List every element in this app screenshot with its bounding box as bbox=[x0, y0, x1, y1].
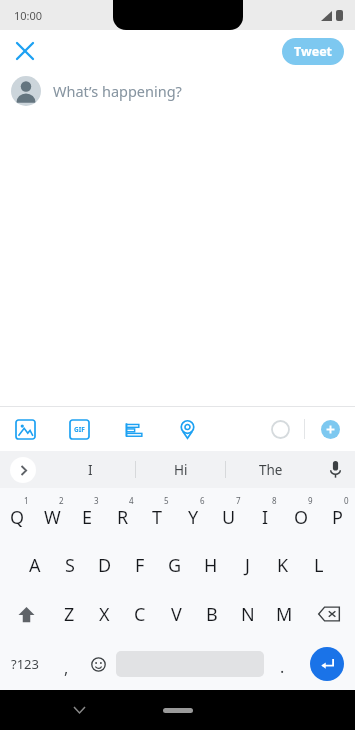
button[interactable]: L bbox=[301, 540, 337, 590]
button[interactable]: V bbox=[158, 590, 194, 638]
button[interactable]: Home bbox=[163, 708, 193, 713]
staticText: W bbox=[44, 505, 61, 530]
staticText: 4 bbox=[129, 495, 134, 506]
staticText: ?123 bbox=[11, 655, 39, 673]
button[interactable]: B bbox=[194, 590, 230, 638]
button[interactable]: O bbox=[283, 488, 319, 540]
button[interactable]: Emoji bbox=[82, 638, 114, 690]
staticText: X bbox=[99, 602, 110, 627]
button[interactable]: I bbox=[46, 451, 135, 488]
button[interactable]: I bbox=[247, 488, 283, 540]
button[interactable]: T bbox=[140, 488, 175, 540]
staticText: Hi bbox=[174, 461, 188, 479]
staticText: 0 bbox=[344, 495, 349, 506]
staticText: T bbox=[152, 505, 163, 530]
button[interactable]: Voice input bbox=[315, 451, 355, 488]
button[interactable]: X bbox=[87, 590, 122, 638]
staticText: I bbox=[88, 461, 93, 479]
button[interactable]: U bbox=[211, 488, 247, 540]
staticText: Tweet bbox=[294, 43, 333, 60]
staticText: What’s happening? bbox=[53, 81, 182, 101]
staticText: K bbox=[277, 553, 289, 578]
staticText: , bbox=[64, 657, 69, 679]
button[interactable]: J bbox=[229, 540, 265, 590]
button[interactable]: P bbox=[319, 488, 355, 540]
staticText: J bbox=[245, 553, 250, 578]
button[interactable]: R bbox=[105, 488, 140, 540]
button[interactable]: Character count bbox=[265, 414, 295, 444]
staticText: R bbox=[117, 505, 129, 530]
staticText: B bbox=[206, 602, 218, 627]
button[interactable]: Tweet bbox=[282, 38, 344, 65]
button[interactable]: Close bbox=[7, 33, 43, 69]
staticText: C bbox=[134, 602, 146, 627]
button[interactable]: Add GIF bbox=[64, 414, 94, 444]
button[interactable]: Add another Tweet bbox=[314, 413, 346, 445]
staticText: GIF bbox=[74, 425, 85, 434]
button[interactable]: The bbox=[226, 451, 315, 488]
button[interactable]: E bbox=[70, 488, 105, 540]
staticText: 1 bbox=[24, 495, 29, 506]
staticText: A bbox=[29, 553, 41, 578]
button[interactable]: Enter bbox=[310, 647, 344, 681]
button[interactable]: Y bbox=[175, 488, 211, 540]
staticText: 8 bbox=[272, 495, 277, 506]
staticText: . bbox=[280, 656, 285, 678]
staticText: 7 bbox=[236, 495, 241, 506]
staticText: 9 bbox=[308, 495, 313, 506]
staticText: F bbox=[135, 553, 145, 578]
staticText: V bbox=[171, 602, 182, 627]
button[interactable]: N bbox=[230, 590, 266, 638]
button[interactable]: Shift bbox=[0, 590, 52, 638]
button[interactable]: Backspace bbox=[302, 590, 355, 638]
button[interactable]: Add photo bbox=[10, 414, 40, 444]
staticText: 3 bbox=[94, 495, 99, 506]
staticText: 2 bbox=[59, 495, 64, 506]
staticText: N bbox=[241, 602, 255, 627]
button[interactable]: S bbox=[52, 540, 87, 590]
staticText: Y bbox=[188, 505, 199, 530]
staticText: D bbox=[98, 553, 112, 578]
staticText: The bbox=[259, 461, 283, 479]
button[interactable]: Q bbox=[0, 488, 35, 540]
staticText: Q bbox=[10, 505, 25, 530]
button[interactable]: More suggestions bbox=[10, 457, 36, 483]
staticText: P bbox=[332, 505, 343, 530]
button[interactable]: M bbox=[266, 590, 302, 638]
button[interactable]: Add location bbox=[172, 414, 202, 444]
button[interactable]: A bbox=[17, 540, 52, 590]
staticText: O bbox=[294, 505, 309, 530]
staticText: E bbox=[82, 505, 93, 530]
staticText: 10:00 bbox=[14, 8, 43, 23]
button[interactable]: D bbox=[87, 540, 122, 590]
button[interactable]: C bbox=[122, 590, 158, 638]
button[interactable]: W bbox=[35, 488, 70, 540]
button[interactable]: K bbox=[265, 540, 301, 590]
button[interactable]: . bbox=[266, 638, 298, 690]
staticText: 6 bbox=[200, 495, 205, 506]
button[interactable]: Hi bbox=[136, 451, 225, 488]
button[interactable]: G bbox=[157, 540, 193, 590]
staticText: Z bbox=[64, 602, 75, 627]
staticText: G bbox=[168, 553, 182, 578]
button[interactable]: Add poll bbox=[118, 414, 148, 444]
staticText: H bbox=[204, 553, 218, 578]
button[interactable]: Hide keyboard bbox=[63, 694, 95, 726]
staticText: U bbox=[222, 505, 236, 530]
button[interactable]: ?123 bbox=[0, 638, 50, 690]
staticText: M bbox=[276, 602, 293, 627]
staticText: L bbox=[314, 553, 324, 578]
button[interactable]: , bbox=[50, 638, 82, 690]
button[interactable]: F bbox=[122, 540, 157, 590]
staticText: S bbox=[65, 553, 75, 578]
staticText: 5 bbox=[164, 495, 169, 506]
button[interactable]: Z bbox=[52, 590, 87, 638]
button[interactable]: H bbox=[193, 540, 229, 590]
staticText: I bbox=[262, 505, 269, 530]
